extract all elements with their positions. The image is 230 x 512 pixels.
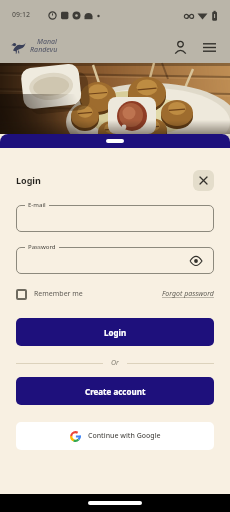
button[interactable]: Login — [16, 318, 214, 346]
staticText: Password — [28, 243, 56, 251]
staticText: Or — [111, 358, 119, 368]
staticText: Continue with Google — [88, 431, 161, 441]
button[interactable] — [16, 205, 214, 232]
staticText: Randevu — [30, 45, 58, 55]
staticText: Login — [104, 327, 127, 338]
button[interactable]: Continue with Google — [16, 422, 214, 450]
staticText: E-mail — [28, 201, 46, 209]
button[interactable] — [199, 37, 219, 57]
button[interactable]: Forgot password — [162, 289, 214, 299]
staticText: 09:12 — [12, 10, 30, 20]
button[interactable] — [16, 289, 27, 300]
staticText: Remember me — [34, 289, 83, 299]
button[interactable] — [16, 247, 214, 274]
staticText: Create account — [85, 386, 146, 397]
staticText: Manal — [37, 37, 58, 47]
button[interactable]: Create account — [16, 377, 214, 405]
button[interactable] — [193, 170, 214, 191]
button[interactable] — [170, 37, 190, 57]
staticText: Login — [16, 174, 41, 186]
